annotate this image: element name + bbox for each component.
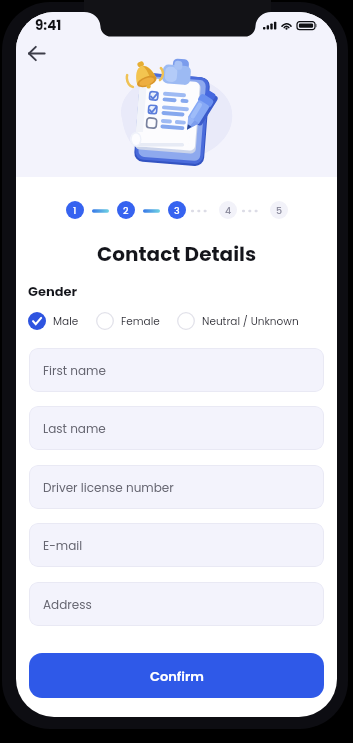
staticText: Neutral / Unknown bbox=[202, 314, 299, 329]
staticText: 5 bbox=[276, 204, 283, 217]
staticText: 1 bbox=[73, 204, 77, 217]
button[interactable]: E-mail bbox=[29, 523, 324, 567]
button[interactable]: First name bbox=[29, 348, 324, 392]
button[interactable]: Confirm bbox=[29, 653, 324, 698]
staticText: 4 bbox=[225, 204, 232, 217]
staticText: Confirm bbox=[150, 667, 204, 685]
button[interactable]: Male bbox=[28, 312, 79, 330]
staticText: Female bbox=[121, 314, 160, 329]
staticText: First name bbox=[43, 362, 106, 379]
button[interactable]: 3 bbox=[168, 201, 186, 219]
staticText: Gender bbox=[28, 282, 78, 300]
button[interactable]: Address bbox=[29, 582, 324, 626]
button[interactable]: Neutral / Unknown bbox=[177, 312, 299, 330]
button[interactable]: Female bbox=[96, 312, 160, 330]
button[interactable]: 1 bbox=[66, 201, 84, 219]
button[interactable]: Driver license number bbox=[29, 465, 324, 509]
staticText: 2 bbox=[123, 204, 129, 217]
staticText: 3 bbox=[174, 204, 180, 217]
button[interactable]: 2 bbox=[117, 201, 135, 219]
staticText: Last name bbox=[43, 420, 106, 437]
button[interactable]: 4 bbox=[219, 201, 237, 219]
staticText: Contact Details bbox=[97, 240, 257, 268]
staticText: Male bbox=[53, 314, 79, 329]
staticText: Driver license number bbox=[43, 479, 174, 496]
button[interactable]: Back bbox=[20, 37, 52, 69]
button[interactable]: 5 bbox=[270, 201, 288, 219]
staticText: 9:41 bbox=[35, 16, 62, 35]
staticText: E-mail bbox=[43, 537, 83, 554]
button[interactable]: Last name bbox=[29, 406, 324, 450]
staticText: Address bbox=[43, 596, 92, 613]
